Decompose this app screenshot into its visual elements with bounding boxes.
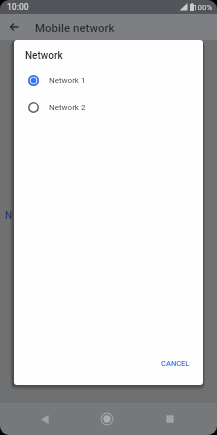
staticText: 10:00 — [7, 2, 29, 12]
button[interactable] — [156, 405, 184, 433]
staticText: CANCEL — [161, 359, 190, 368]
button[interactable]: CANCEL — [156, 354, 195, 372]
button[interactable]: Network 2 — [14, 94, 203, 121]
staticText: Network 2 — [49, 103, 86, 112]
staticText: Mobile network — [35, 21, 115, 34]
staticText: Network — [25, 50, 63, 62]
staticText: Network 1 — [49, 76, 86, 85]
staticText: N — [5, 210, 13, 222]
button[interactable] — [0, 14, 28, 40]
button[interactable] — [93, 405, 121, 433]
button[interactable]: Network 1 — [14, 67, 203, 94]
staticText: 100% — [193, 3, 213, 12]
button[interactable] — [31, 405, 59, 433]
